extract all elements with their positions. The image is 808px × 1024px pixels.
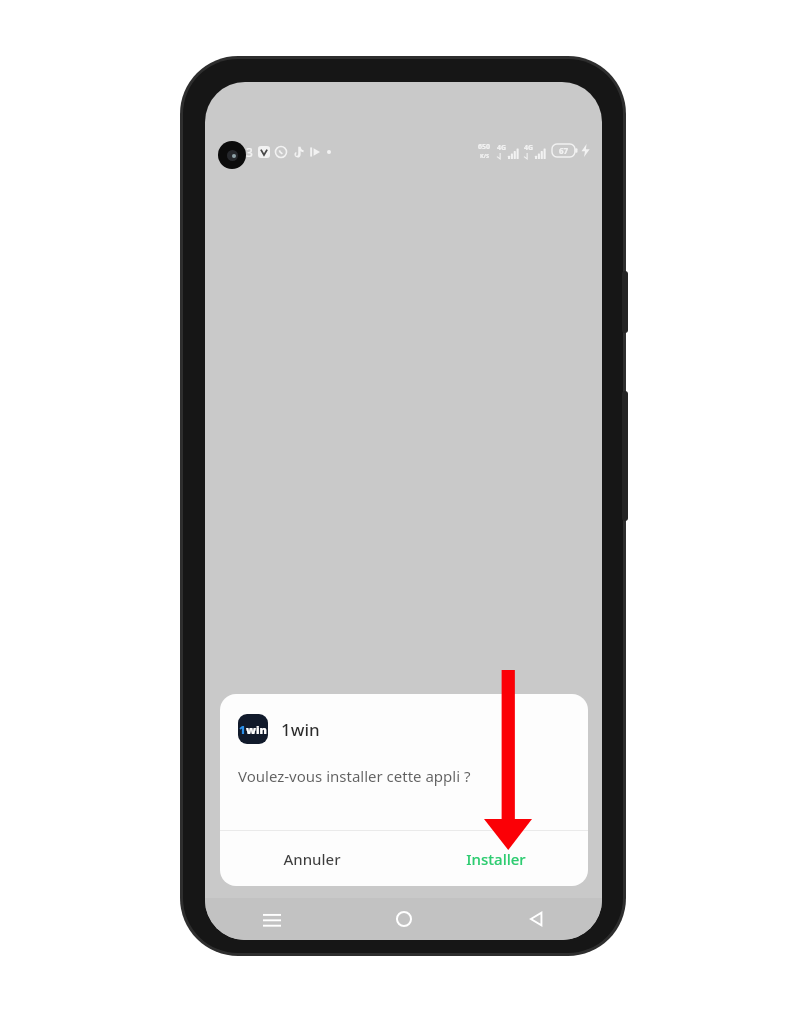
staticText: Voulez-vous installer cette appli ? — [238, 766, 471, 786]
staticText: 4G — [524, 143, 534, 153]
staticText: 4G — [497, 143, 507, 153]
staticText: Annuler — [283, 849, 341, 869]
staticText: Installer — [466, 849, 526, 869]
staticText: win — [246, 722, 267, 737]
staticText: 650 — [478, 142, 491, 152]
button[interactable]: Installer — [404, 831, 588, 886]
button[interactable]: Back — [470, 898, 602, 940]
button[interactable]: Annuler — [220, 831, 404, 886]
staticText: 3 — [246, 144, 253, 160]
staticText: 1 — [239, 722, 246, 737]
staticText: K/S — [480, 152, 489, 159]
button[interactable]: Recent apps — [205, 898, 338, 940]
button[interactable]: Home — [338, 898, 470, 940]
staticText: 67 — [559, 145, 569, 156]
staticText: 1win — [281, 718, 320, 741]
